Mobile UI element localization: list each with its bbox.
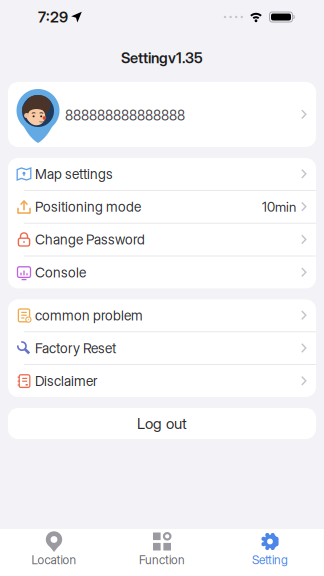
button[interactable]: Positioning mode [8,191,316,223]
button[interactable]: Factory Reset [8,332,316,364]
button[interactable]: Log out [8,408,316,439]
button[interactable]: Location [0,530,108,567]
staticText: Log out [137,414,187,433]
button[interactable]: Change Password [8,224,316,256]
staticText: Settingv1.35 [121,49,203,67]
button[interactable]: Function [108,530,216,567]
staticText: 888888888888888 [65,107,185,124]
button[interactable]: common problem [8,299,316,331]
staticText: Setting [252,552,288,567]
staticText: common problem [35,307,143,324]
button[interactable]: Disclaimer [8,365,316,397]
staticText: Map settings [35,166,113,182]
button[interactable]: Setting [216,530,324,567]
staticText: Console [35,264,86,281]
staticText: Location [31,552,76,567]
staticText: 7:29 [38,8,68,26]
staticText: Function [139,552,185,567]
staticText: Factory Reset [35,340,116,356]
button[interactable]: Console [8,256,316,288]
staticText: Change Password [35,231,145,248]
staticText: Disclaimer [35,373,97,389]
button[interactable]: 888888888888888 [8,82,316,147]
button[interactable]: Map settings [8,158,316,190]
staticText: Positioning mode [35,198,141,215]
staticText: 10min [262,199,296,215]
